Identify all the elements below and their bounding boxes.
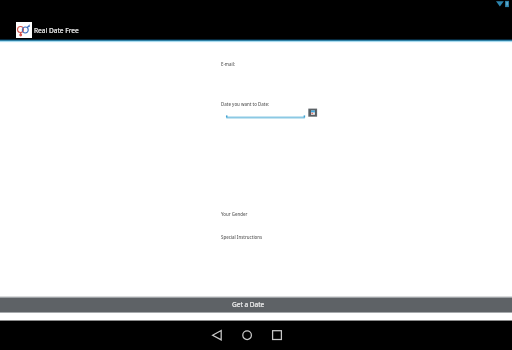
button[interactable]: Recents: [269, 327, 285, 343]
button[interactable]: Back: [209, 327, 225, 343]
button[interactable]: Pick date: [308, 108, 318, 117]
button[interactable]: Home: [239, 327, 255, 343]
staticText: Real Date Free: [34, 26, 79, 35]
staticText: Special Instructions: [221, 234, 263, 240]
staticText: Date you want to Date:: [221, 101, 270, 107]
staticText: Get a Date: [232, 300, 265, 309]
button[interactable]: Get a Date: [0, 296, 512, 313]
staticText: E-mail:: [221, 61, 236, 67]
staticText: Your Gender: [221, 211, 248, 217]
